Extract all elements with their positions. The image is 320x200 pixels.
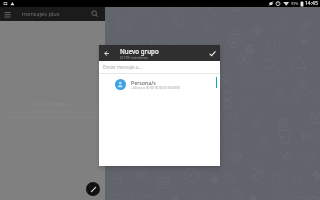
staticText: Enviar mensaje a...	[103, 64, 142, 70]
staticText: Persona/s	[131, 79, 156, 86]
staticText: 0/199 miembros	[120, 55, 148, 60]
staticText: 99%	[291, 1, 299, 6]
staticText: Nuevo grupo	[120, 47, 159, 55]
button[interactable]: Confirm	[204, 45, 220, 61]
button[interactable]: Persona/s	[99, 74, 220, 94]
button[interactable]: Back	[99, 45, 114, 61]
staticText: Envía mensajes a tus amigos y familiares…	[6, 109, 100, 119]
staticText: 14:45	[305, 0, 318, 7]
staticText: +34 xxx x 00 00 00 00 00 00 0000	[131, 86, 180, 90]
staticText: mensajes plus	[22, 10, 60, 18]
button[interactable]: Menu	[0, 7, 15, 21]
button[interactable]: Search	[88, 7, 102, 21]
button[interactable]: New chat	[86, 182, 100, 196]
